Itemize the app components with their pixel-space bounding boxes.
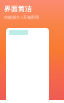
staticText: 功能强大 / 开箱即用 bbox=[4, 15, 39, 20]
staticText: 界面简洁 bbox=[4, 5, 32, 13]
